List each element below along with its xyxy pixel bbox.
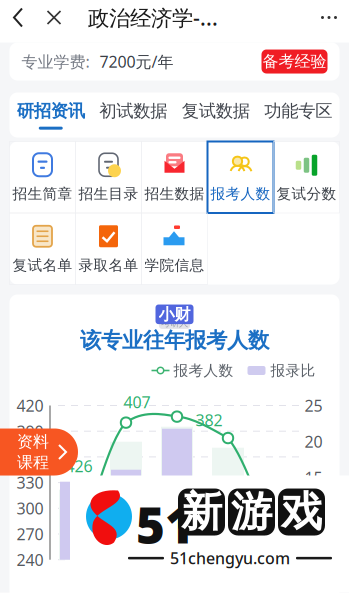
button[interactable]: 备考经验 <box>261 49 327 73</box>
staticText: 该专业往年报考人数 <box>80 327 269 354</box>
staticText: 330 <box>16 472 43 493</box>
button[interactable]: More <box>309 0 349 37</box>
staticText: 240 <box>16 549 43 570</box>
staticText: 新 <box>181 487 222 537</box>
staticText: 研招资讯 <box>17 100 85 122</box>
staticText: 游 <box>231 487 272 537</box>
button[interactable]: 招生简章 <box>9 141 75 213</box>
button[interactable]: 学院信息 <box>141 213 207 284</box>
staticText: 戏 <box>281 487 322 537</box>
staticText: 初试数据 <box>99 100 167 122</box>
staticText: 功能专区 <box>264 100 332 122</box>
staticText: 复试分数 <box>276 185 336 203</box>
staticText: 51chengyu.com <box>170 547 290 569</box>
staticText: 小财 <box>158 304 190 324</box>
staticText: 报考人数 <box>173 361 233 379</box>
staticText: 360 <box>16 446 43 467</box>
button[interactable]: 复试数据 <box>174 92 257 137</box>
staticText: 407 <box>123 391 150 413</box>
staticText: 招生目录 <box>78 185 138 203</box>
staticText: 420 <box>16 395 43 416</box>
staticText: 招生简章 <box>12 185 72 203</box>
staticText: 学院信息 <box>144 256 204 274</box>
staticText: 复试数据 <box>182 100 250 122</box>
button[interactable]: 资料 <box>0 428 78 475</box>
staticText: 390 <box>16 421 43 442</box>
button[interactable]: 招生目录 <box>75 141 141 213</box>
staticText: 300 <box>16 498 43 519</box>
staticText: 7200元/年 <box>99 51 173 72</box>
button[interactable]: Back <box>0 0 36 37</box>
staticText: 招生数据 <box>144 185 204 203</box>
button[interactable]: 初试数据 <box>92 92 174 137</box>
button[interactable]: 报考人数 <box>207 141 273 213</box>
staticText: 报录比 <box>270 361 315 379</box>
staticText: 考研人 <box>161 317 188 329</box>
staticText: 270 <box>16 523 43 545</box>
staticText: 51 <box>136 491 194 557</box>
button[interactable]: 录取名单 <box>75 213 141 284</box>
staticText: 专业学费: <box>21 51 89 72</box>
staticText: 资料 <box>17 432 49 451</box>
staticText: 25 <box>304 395 322 416</box>
staticText: 382 <box>195 409 222 431</box>
staticText: 课程 <box>17 452 49 472</box>
button[interactable]: 研招资讯 <box>9 92 92 137</box>
staticText: 录取名单 <box>78 256 138 274</box>
staticText: 政治经济学-... <box>88 3 218 32</box>
button[interactable]: 复试名单 <box>9 213 75 284</box>
button[interactable]: 复试分数 <box>273 141 339 213</box>
button[interactable]: 功能专区 <box>257 92 339 137</box>
staticText: 15 <box>304 467 322 488</box>
staticText: 20 <box>304 431 322 452</box>
staticText: 复试名单 <box>12 256 72 274</box>
staticText: 备考经验 <box>262 52 326 71</box>
staticText: 报考人数 <box>210 185 270 203</box>
button[interactable]: 招生数据 <box>141 141 207 213</box>
button[interactable]: Close <box>36 0 72 37</box>
staticText: 426 <box>65 455 92 477</box>
